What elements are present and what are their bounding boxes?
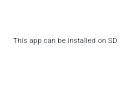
staticText: This app can be installed on SD bbox=[13, 36, 118, 45]
button[interactable]: This app can be installed on SD bbox=[0, 36, 120, 45]
